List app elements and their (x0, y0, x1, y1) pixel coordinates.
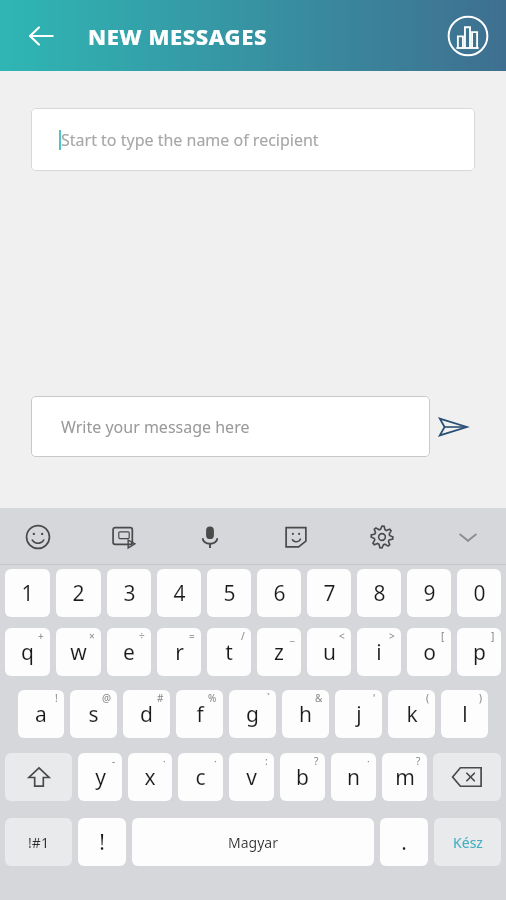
staticText: < (339, 629, 345, 643)
button[interactable]: s (70, 690, 117, 738)
button[interactable]: v (229, 753, 274, 801)
button[interactable]: Voice input (180, 511, 240, 563)
button[interactable]: GIF (94, 511, 154, 563)
staticText: n (347, 763, 360, 792)
staticText: m (395, 763, 415, 792)
staticText: @ (102, 691, 111, 705)
button[interactable]: 4 (157, 569, 201, 617)
button[interactable]: t (207, 628, 251, 676)
button[interactable]: Send (430, 404, 476, 450)
button[interactable]: i (357, 628, 401, 676)
button[interactable]: q (5, 628, 50, 676)
staticText: > (389, 629, 395, 643)
button[interactable]: c (178, 753, 223, 801)
staticText: t (225, 638, 233, 667)
button[interactable]: a (18, 690, 64, 738)
staticText: d (140, 700, 153, 729)
staticText: g (246, 700, 259, 729)
button[interactable]: 2 (56, 569, 101, 617)
staticText: ( (426, 691, 429, 705)
button[interactable]: 6 (257, 569, 301, 617)
button[interactable]: n (331, 753, 376, 801)
button[interactable]: Magyar (132, 818, 374, 866)
staticText: q (21, 638, 34, 667)
staticText: % (208, 691, 217, 705)
button[interactable]: g (229, 690, 276, 738)
staticText: z (274, 638, 284, 667)
button[interactable]: 3 (107, 569, 151, 617)
staticText: ! (55, 691, 58, 705)
button[interactable]: 7 (307, 569, 351, 617)
button[interactable]: u (307, 628, 351, 676)
button[interactable]: e (107, 628, 151, 676)
button[interactable]: Kész (434, 818, 501, 866)
button[interactable]: Sticker (266, 511, 326, 563)
staticText: ! (99, 828, 105, 857)
staticText: ] (491, 629, 495, 643)
staticText: = (189, 629, 195, 643)
button[interactable]: r (157, 628, 201, 676)
staticText: · (367, 754, 370, 768)
button[interactable]: !#1 (5, 818, 72, 866)
staticText: l (462, 700, 468, 729)
button[interactable]: Write your message here (31, 396, 430, 457)
staticText: 7 (323, 579, 336, 608)
staticText: a (35, 700, 47, 729)
staticText: · (214, 754, 217, 768)
button[interactable]: Emoji (8, 511, 68, 563)
button[interactable]: d (123, 690, 170, 738)
button[interactable]: Start to type the name of recipient (31, 108, 475, 171)
staticText: & (315, 691, 323, 705)
staticText: 5 (223, 579, 236, 608)
button[interactable]: f (176, 690, 223, 738)
staticText: 6 (273, 579, 286, 608)
button[interactable]: 0 (457, 569, 501, 617)
staticText: / (241, 629, 245, 643)
button[interactable]: . (380, 818, 428, 866)
staticText: - (112, 754, 116, 768)
staticText: Write your message here (61, 416, 250, 438)
button[interactable]: b (280, 753, 325, 801)
staticText: b (296, 763, 309, 792)
staticText: ` (267, 691, 270, 705)
staticText: # (157, 691, 164, 705)
button[interactable]: m (382, 753, 427, 801)
button[interactable]: y (78, 753, 122, 801)
staticText: w (70, 638, 87, 667)
staticText: x (144, 763, 156, 792)
button[interactable]: h (282, 690, 329, 738)
staticText: 9 (423, 579, 436, 608)
button[interactable]: App logo (442, 10, 494, 62)
button[interactable]: 5 (207, 569, 251, 617)
staticText: i (376, 638, 382, 667)
staticText: Magyar (228, 833, 278, 852)
staticText: u (323, 638, 336, 667)
staticText: Start to type the name of recipient (61, 129, 319, 151)
button[interactable]: k (388, 690, 435, 738)
button[interactable]: Collapse keyboard (438, 511, 498, 563)
button[interactable]: ! (78, 818, 126, 866)
staticText: c (195, 763, 206, 792)
staticText: _ (290, 629, 295, 643)
button[interactable]: z (257, 628, 301, 676)
button[interactable]: j (335, 690, 382, 738)
button[interactable]: x (128, 753, 172, 801)
button[interactable]: 9 (407, 569, 451, 617)
button[interactable]: Back (12, 0, 70, 71)
staticText: e (123, 638, 135, 667)
staticText: ' (373, 691, 376, 705)
button[interactable]: 1 (5, 569, 50, 617)
staticText: !#1 (28, 833, 49, 852)
staticText: r (175, 638, 184, 667)
button[interactable]: l (441, 690, 488, 738)
button[interactable]: w (56, 628, 101, 676)
staticText: 8 (373, 579, 386, 608)
button[interactable]: p (457, 628, 501, 676)
staticText: . (401, 828, 407, 857)
button[interactable]: o (407, 628, 451, 676)
staticText: NEW MESSAGES (88, 21, 268, 51)
button[interactable]: 8 (357, 569, 401, 617)
button[interactable]: Keyboard settings (352, 511, 412, 563)
button[interactable]: Backspace (433, 753, 501, 801)
button[interactable]: Shift (5, 753, 72, 801)
